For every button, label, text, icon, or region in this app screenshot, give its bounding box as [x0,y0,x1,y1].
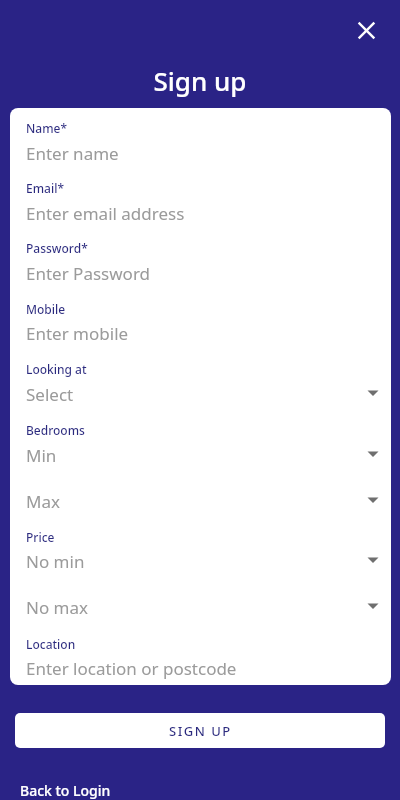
staticText: No min [26,550,373,573]
button[interactable]: Max [18,489,385,513]
staticText: SIGN UP [169,722,232,740]
staticText: Looking at [26,361,87,377]
staticText: Location [26,636,76,652]
staticText: Enter Password [26,262,151,285]
staticText: Enter location or postcode [26,657,237,680]
button[interactable]: Back to Login [20,781,111,800]
staticText: No max [26,596,373,619]
button[interactable] [348,12,384,48]
staticText: Mobile [26,301,66,317]
button[interactable]: Select [18,382,385,406]
button[interactable]: Min [18,443,385,467]
staticText: Name* [26,120,68,136]
staticText: Select [26,383,373,406]
staticText: Email* [26,180,64,196]
staticText: Min [26,444,373,467]
staticText: Enter mobile [26,322,129,345]
staticText: Enter name [26,142,119,165]
staticText: Price [26,529,55,545]
staticText: Max [26,490,373,513]
staticText: Sign up [0,63,400,98]
staticText: Enter email address [26,202,185,225]
button[interactable]: No min [18,549,385,573]
staticText: Bedrooms [26,422,85,438]
button[interactable]: No max [18,595,385,619]
button[interactable]: SIGN UP [15,713,385,748]
staticText: Password* [26,240,88,256]
